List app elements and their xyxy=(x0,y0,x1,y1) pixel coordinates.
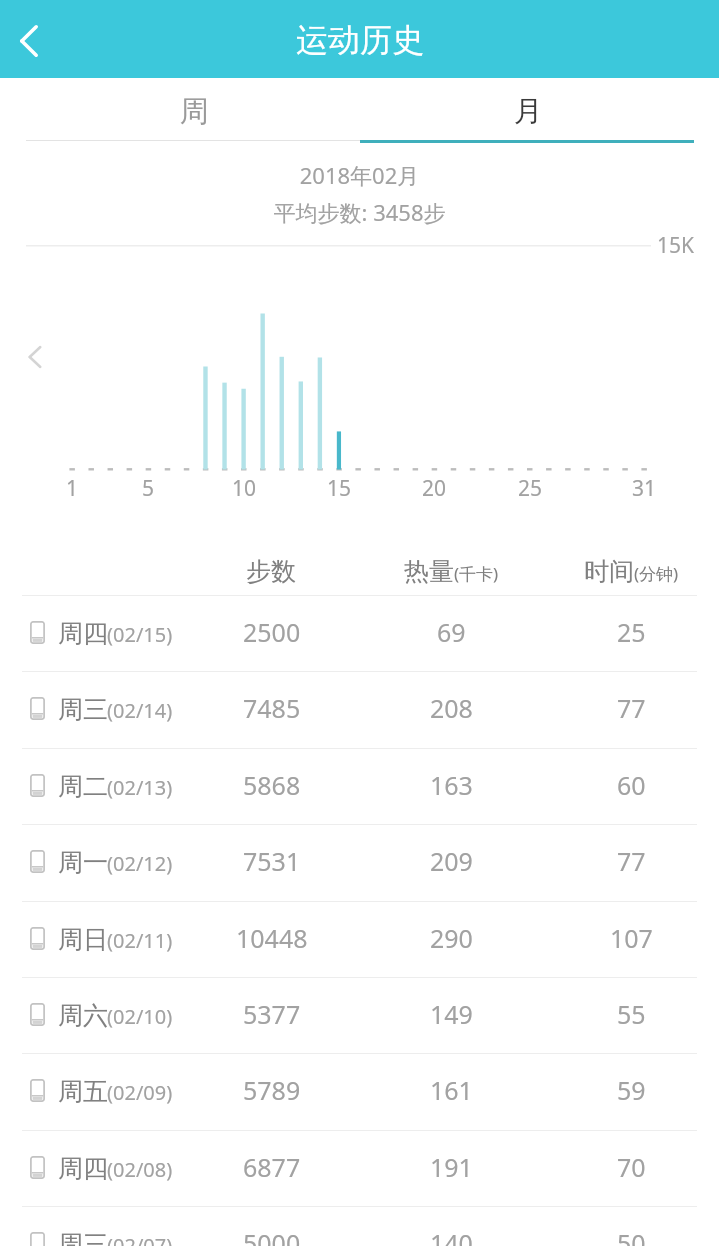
staticText: 15 xyxy=(327,474,352,503)
staticText: (02/08) xyxy=(107,1156,173,1183)
button[interactable]: 周一 xyxy=(0,825,719,900)
staticText: (02/09) xyxy=(107,1079,173,1106)
staticText: 77 xyxy=(617,691,646,725)
staticText: 周四 xyxy=(58,618,108,649)
staticText: 2018年02月 xyxy=(0,160,719,190)
staticText: 69 xyxy=(437,615,466,649)
staticText: 55 xyxy=(617,997,646,1031)
staticText: 周五 xyxy=(58,1076,108,1107)
button[interactable]: 月 xyxy=(359,78,694,140)
staticText: 107 xyxy=(610,921,653,955)
staticText: (02/13) xyxy=(107,774,173,801)
staticText: 周四 xyxy=(58,1153,108,1184)
staticText: 70 xyxy=(617,1150,646,1184)
button[interactable]: 周五 xyxy=(0,1054,719,1129)
staticText: 149 xyxy=(430,997,473,1031)
staticText: 步数 xyxy=(246,556,296,587)
staticText: 周一 xyxy=(58,847,108,878)
button[interactable]: 周六 xyxy=(0,978,719,1053)
staticText: 运动历史 xyxy=(296,20,424,60)
button[interactable]: 周三 xyxy=(0,672,719,747)
staticText: 10 xyxy=(232,474,257,503)
staticText: 208 xyxy=(430,691,473,725)
staticText: 50 xyxy=(617,1226,646,1246)
button[interactable]: Previous month xyxy=(14,333,60,379)
staticText: (分钟) xyxy=(634,562,679,585)
staticText: 2500 xyxy=(243,615,301,649)
staticText: (02/10) xyxy=(107,1003,173,1030)
staticText: 7531 xyxy=(243,844,301,878)
staticText: 热量 xyxy=(404,556,454,587)
staticText: 163 xyxy=(430,768,473,802)
staticText: 周 xyxy=(180,93,209,130)
staticText: (千卡) xyxy=(454,562,499,585)
staticText: 290 xyxy=(430,921,473,955)
staticText: (02/15) xyxy=(107,621,173,648)
staticText: 191 xyxy=(430,1150,473,1184)
staticText: 月 xyxy=(514,93,543,130)
button[interactable]: 周三 xyxy=(0,1207,719,1246)
button[interactable]: 周四 xyxy=(0,1131,719,1206)
staticText: 140 xyxy=(430,1226,473,1246)
button[interactable]: 周日 xyxy=(0,902,719,977)
staticText: 时间 xyxy=(584,556,634,587)
staticText: 59 xyxy=(617,1073,646,1107)
staticText: 5000 xyxy=(243,1226,301,1246)
staticText: 平均步数: 3458步 xyxy=(0,197,719,227)
staticText: 周三 xyxy=(58,694,108,725)
staticText: 周二 xyxy=(58,771,108,802)
staticText: 25 xyxy=(617,615,646,649)
staticText: (02/12) xyxy=(107,850,173,877)
button[interactable]: Back xyxy=(0,7,58,71)
staticText: (02/11) xyxy=(107,927,173,954)
staticText: 5377 xyxy=(243,997,301,1031)
staticText: 1 xyxy=(66,474,79,503)
staticText: 5789 xyxy=(243,1073,301,1107)
staticText: 5868 xyxy=(243,768,301,802)
staticText: 周六 xyxy=(58,1000,108,1031)
button[interactable]: 周二 xyxy=(0,749,719,824)
staticText: 60 xyxy=(617,768,646,802)
staticText: 周三 xyxy=(58,1229,108,1246)
staticText: 161 xyxy=(430,1073,473,1107)
staticText: 209 xyxy=(430,844,473,878)
staticText: 15K xyxy=(657,231,695,260)
staticText: 10448 xyxy=(236,921,308,955)
staticText: 6877 xyxy=(243,1150,301,1184)
staticText: 7485 xyxy=(243,691,301,725)
staticText: 周日 xyxy=(58,924,108,955)
staticText: 31 xyxy=(632,474,657,503)
staticText: (02/07) xyxy=(107,1232,173,1246)
button[interactable]: 周 xyxy=(24,78,359,140)
staticText: 20 xyxy=(422,474,447,503)
button[interactable]: 周四 xyxy=(0,596,719,671)
staticText: (02/14) xyxy=(107,697,173,724)
staticText: 25 xyxy=(518,474,543,503)
staticText: 77 xyxy=(617,844,646,878)
staticText: 5 xyxy=(142,474,155,503)
